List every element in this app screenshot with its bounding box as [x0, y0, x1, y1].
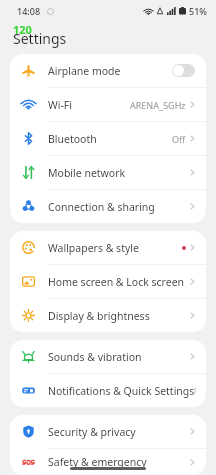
button[interactable]: Bluetooth — [10, 122, 206, 155]
staticText: Notifications & Quick Settings — [48, 384, 195, 398]
staticText: Off — [172, 133, 186, 145]
staticText: Connection & sharing — [48, 200, 155, 214]
staticText: 120 — [13, 22, 32, 37]
staticText: 51% — [189, 5, 207, 17]
button[interactable]: Connection & sharing — [10, 190, 206, 223]
staticText: Mobile network — [48, 166, 126, 180]
staticText: Wi-Fi — [48, 98, 73, 112]
staticText: Settings — [13, 29, 67, 48]
button[interactable]: Airplane mode — [10, 54, 206, 87]
staticText: Wallpapers & style — [48, 241, 139, 255]
staticText: Display & brightness — [48, 309, 150, 323]
staticText: ARENA_5GHz — [130, 99, 186, 111]
staticText: Sounds & vibration — [48, 350, 142, 364]
button[interactable]: Airplane mode — [172, 64, 195, 77]
staticText: Home screen & Lock screen — [48, 275, 185, 289]
button[interactable]: Safety & emergency — [10, 449, 206, 475]
button[interactable]: Wi-Fi — [10, 88, 206, 121]
staticText: Bluetooth — [48, 132, 97, 146]
button[interactable]: Mobile network — [10, 156, 206, 189]
button[interactable]: Display & brightness — [10, 299, 206, 332]
staticText: Safety & emergency — [48, 455, 147, 469]
button[interactable]: Notifications & Quick Settings — [10, 374, 206, 407]
staticText: 14:08 — [17, 5, 41, 17]
button[interactable]: Sounds & vibration — [10, 340, 206, 373]
staticText: Security & privacy — [48, 425, 136, 439]
button[interactable]: Home screen & Lock screen — [10, 265, 206, 298]
button[interactable]: Security & privacy — [10, 415, 206, 448]
staticText: Airplane mode — [48, 64, 121, 78]
button[interactable]: Wallpapers & style — [10, 231, 206, 264]
